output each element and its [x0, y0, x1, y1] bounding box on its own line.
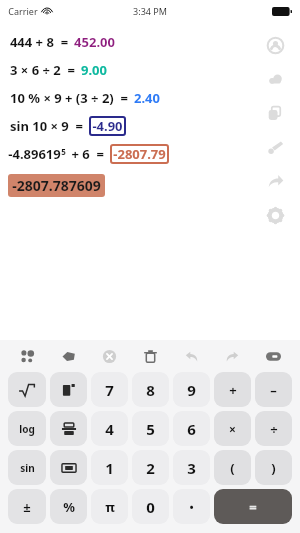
- button[interactable]: Redo: [212, 344, 253, 368]
- button[interactable]: =: [214, 489, 292, 524]
- staticText: + 6 =: [66, 145, 106, 163]
- button[interactable]: Power: [50, 372, 87, 407]
- staticText: 2: [146, 458, 155, 478]
- button[interactable]: 3: [173, 450, 210, 485]
- button[interactable]: 5: [132, 411, 169, 446]
- staticText: 6: [187, 419, 196, 439]
- button[interactable]: (: [214, 450, 251, 485]
- staticText: •: [189, 499, 194, 514]
- staticText: –: [270, 381, 277, 399]
- staticText: ×: [229, 421, 236, 437]
- staticText: sin 10 × 9 =: [8, 117, 85, 135]
- staticText: 3: [187, 458, 196, 478]
- staticText: 3:34 PM: [133, 5, 167, 17]
- staticText: 7: [105, 380, 114, 400]
- button[interactable]: 7: [91, 372, 128, 407]
- button[interactable]: %: [50, 489, 87, 524]
- staticText: log: [19, 422, 35, 436]
- button[interactable]: -2807.787609: [12, 176, 101, 195]
- button[interactable]: sin: [8, 450, 46, 485]
- staticText: 452.00: [74, 33, 115, 51]
- button[interactable]: 2: [132, 450, 169, 485]
- staticText: Carrier: [8, 5, 38, 17]
- button[interactable]: 8: [132, 372, 169, 407]
- button[interactable]: Fraction: [50, 411, 87, 446]
- button[interactable]: log: [8, 411, 46, 446]
- staticText: =: [249, 498, 257, 516]
- button[interactable]: Tag: [48, 344, 89, 368]
- staticText: %: [63, 498, 75, 516]
- button[interactable]: Brackets: [50, 450, 87, 485]
- staticText: ±: [23, 498, 31, 516]
- staticText: 5: [146, 419, 155, 439]
- button[interactable]: ×: [214, 411, 251, 446]
- button[interactable]: Cloud: [260, 62, 290, 96]
- button[interactable]: Copy: [260, 96, 290, 130]
- button[interactable]: 4: [91, 411, 128, 446]
- button[interactable]: ÷: [255, 411, 292, 446]
- staticText: -2807.79: [113, 145, 166, 163]
- staticText: ): [271, 459, 276, 477]
- staticText: 4: [105, 419, 114, 439]
- button[interactable]: Brush: [260, 130, 290, 164]
- staticText: 2.40: [134, 89, 160, 107]
- staticText: -4.89619: [8, 145, 61, 163]
- button[interactable]: ): [255, 450, 292, 485]
- button[interactable]: 444 + 8 =: [8, 28, 300, 56]
- button[interactable]: 0: [132, 489, 169, 524]
- button[interactable]: Share: [260, 164, 290, 198]
- button[interactable]: Settings: [260, 198, 290, 232]
- staticText: 0: [146, 497, 155, 517]
- staticText: 10 % × 9 + (3 ÷ 2) =: [8, 89, 130, 107]
- button[interactable]: 1: [91, 450, 128, 485]
- staticText: 1: [105, 458, 114, 478]
- button[interactable]: +: [214, 372, 251, 407]
- button[interactable]: 10 % × 9 + (3 ÷ 2) =: [8, 84, 300, 112]
- staticText: 5: [61, 146, 66, 157]
- staticText: -2807.787609: [12, 176, 101, 195]
- button[interactable]: 9: [173, 372, 210, 407]
- button[interactable]: Backspace: [253, 344, 294, 368]
- staticText: 8: [146, 380, 155, 400]
- staticText: -4.90: [92, 117, 123, 135]
- button[interactable]: sin 10 × 9 =: [8, 112, 300, 140]
- button[interactable]: Scatter: [6, 344, 48, 368]
- staticText: 9.00: [81, 61, 107, 79]
- staticText: +: [229, 381, 237, 399]
- staticText: 9: [187, 380, 196, 400]
- button[interactable]: Undo: [171, 344, 212, 368]
- button[interactable]: 6: [173, 411, 210, 446]
- staticText: (: [230, 459, 235, 477]
- staticText: 444 + 8 =: [8, 33, 70, 51]
- button[interactable]: Clear: [89, 344, 130, 368]
- button[interactable]: Delete: [130, 344, 171, 368]
- button[interactable]: π: [91, 489, 128, 524]
- button[interactable]: •: [173, 489, 210, 524]
- button[interactable]: Square root: [8, 372, 46, 407]
- staticText: ÷: [270, 420, 278, 438]
- staticText: sin: [20, 461, 35, 475]
- button[interactable]: –: [255, 372, 292, 407]
- button[interactable]: ±: [8, 489, 46, 524]
- button[interactable]: 3 × 6 ÷ 2 =: [8, 56, 300, 84]
- staticText: π: [105, 498, 115, 516]
- button[interactable]: -4.89619: [8, 140, 300, 168]
- button[interactable]: Account: [260, 28, 290, 62]
- staticText: 3 × 6 ÷ 2 =: [8, 61, 77, 79]
